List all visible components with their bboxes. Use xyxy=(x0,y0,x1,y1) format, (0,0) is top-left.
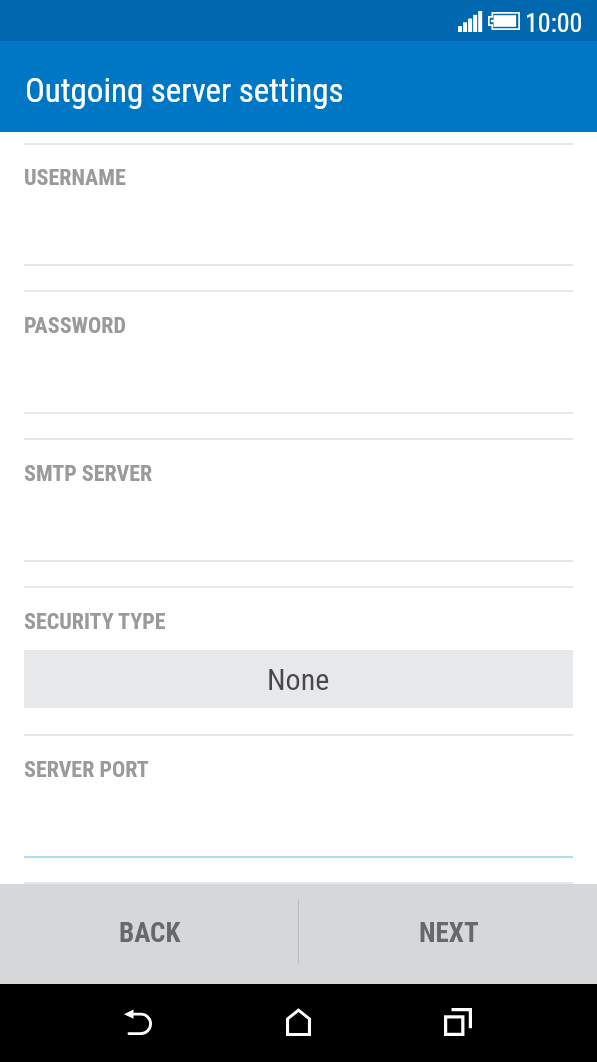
button[interactable]: NEXT xyxy=(298,884,597,984)
button[interactable]: Back xyxy=(58,984,218,1062)
staticText: None xyxy=(267,662,330,697)
staticText: SECURITY TYPE xyxy=(24,609,166,635)
staticText: 10:00 xyxy=(525,8,583,38)
button[interactable]: SERVER PORT xyxy=(0,735,597,883)
staticText: SMTP SERVER xyxy=(24,461,153,487)
button[interactable]: PASSWORD xyxy=(0,291,597,439)
staticText: BACK xyxy=(119,917,181,949)
staticText: SERVER PORT xyxy=(24,757,149,783)
button[interactable]: SMTP SERVER xyxy=(0,439,597,587)
staticText: PASSWORD xyxy=(24,313,126,339)
button[interactable]: None xyxy=(24,650,573,708)
button[interactable]: Home xyxy=(218,984,378,1062)
button[interactable]: Recent apps xyxy=(378,984,538,1062)
staticText: USERNAME xyxy=(24,165,126,191)
staticText: Outgoing server settings xyxy=(25,71,344,110)
staticText: NEXT xyxy=(419,917,479,949)
button[interactable]: USERNAME xyxy=(0,143,597,291)
button[interactable]: BACK xyxy=(0,884,298,984)
